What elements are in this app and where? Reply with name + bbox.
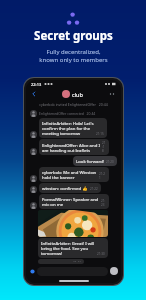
button[interactable]: Attach [29, 268, 36, 275]
staticText: 21:30 [97, 252, 105, 256]
staticText: 21:20 [106, 160, 114, 164]
button[interactable]: club [62, 90, 83, 98]
button[interactable]: Send [110, 267, 118, 275]
staticText: EnlightenedOffer connected 20:44 [39, 111, 96, 116]
staticText: 21:15 [96, 132, 104, 136]
staticText: InfiniteArbiter: Hola! Let's confirm the… [42, 120, 94, 136]
staticText: club [72, 91, 83, 98]
staticText: Secret groups [34, 28, 113, 44]
staticText: FormalWinner: Speaker and mic on me [42, 196, 99, 207]
staticText: Look forward! [76, 158, 104, 164]
staticText: 21:23 [101, 199, 106, 207]
staticText: 21:44 [73, 261, 81, 262]
staticText: cyberbob invited EnlightenedOffer 20:44 [30, 102, 117, 107]
staticText: winston: confirmed 👍 [42, 185, 88, 191]
staticText: 21:18 [102, 141, 106, 153]
staticText: 22:13 [31, 82, 42, 87]
staticText: Fully decentralized, known only to membe… [39, 48, 108, 64]
staticText: 21:21 [99, 172, 106, 180]
staticText: InfiniteArbiter: Great! I will bring the… [41, 240, 95, 256]
staticText: 21:22 [90, 187, 98, 191]
staticText: cyberbob: Me and Winston hold the banner [42, 169, 97, 180]
staticText: EnlightenedOffer: Alice and I are handin… [42, 142, 100, 153]
button[interactable]: Back [30, 90, 38, 98]
button[interactable]: More options [107, 90, 117, 98]
